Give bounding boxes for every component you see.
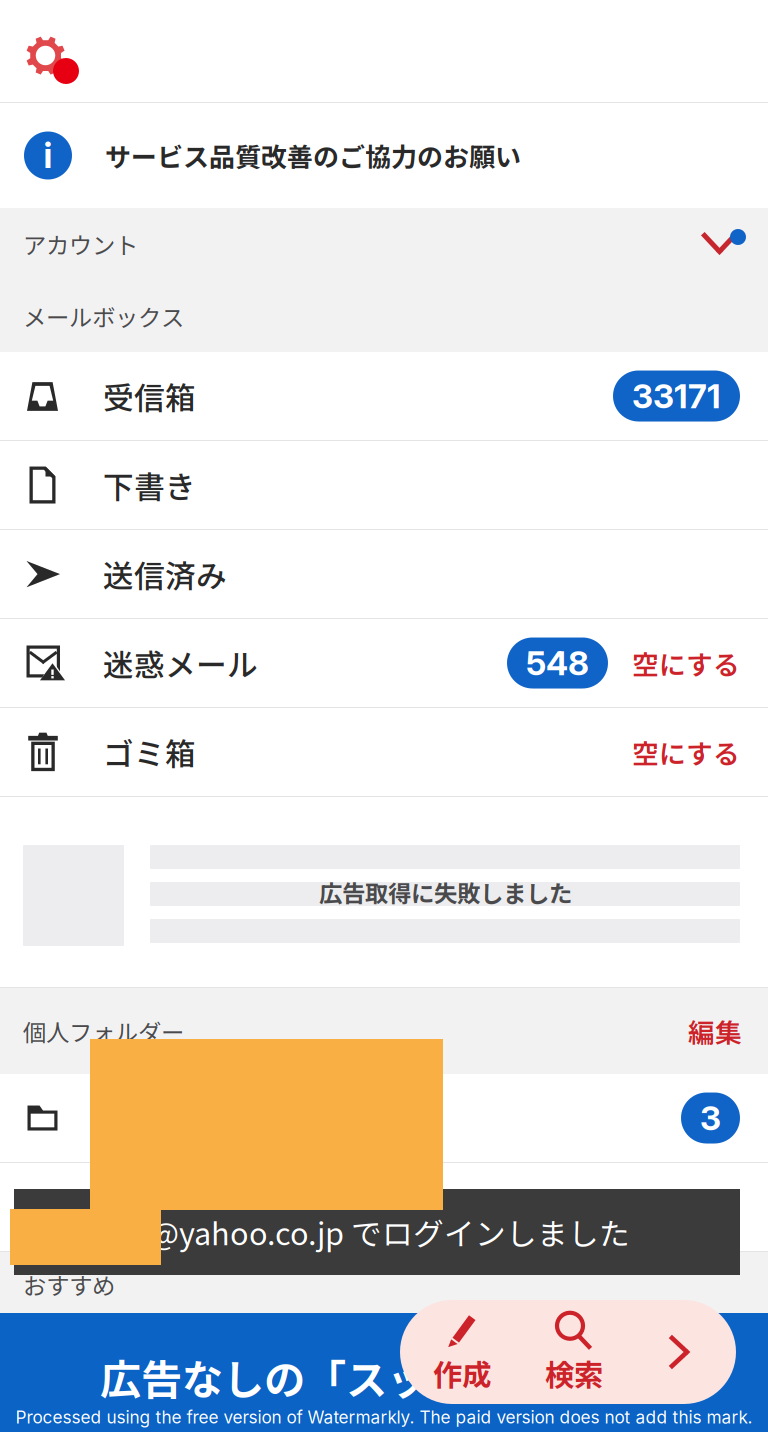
- button[interactable]: 迷惑メール: [0, 619, 768, 707]
- staticText: 広告なしの「スッキリ」体験を。: [100, 1347, 715, 1407]
- button[interactable]: More: [630, 1300, 730, 1404]
- staticText: 受信箱: [103, 374, 196, 418]
- button[interactable]: 下書き: [0, 441, 768, 529]
- staticText: 検索: [545, 1352, 603, 1394]
- button[interactable]: i: [0, 103, 768, 208]
- button[interactable]: [0, 1074, 768, 1162]
- staticText: 送信済み: [103, 552, 227, 596]
- button[interactable]: 編集: [688, 998, 768, 1064]
- button[interactable]: アカウント: [0, 208, 768, 280]
- staticText: おすすめ: [23, 1268, 115, 1301]
- staticText: Processed using the free version of Wate…: [15, 1407, 752, 1428]
- staticText: 編集: [688, 1012, 742, 1050]
- staticText: アカウント: [23, 227, 138, 261]
- staticText: 548: [526, 643, 589, 683]
- staticText: サービス品質改善のご協力のお願い: [105, 137, 521, 174]
- staticText: 3: [700, 1098, 721, 1138]
- button[interactable]: 検索: [518, 1300, 630, 1404]
- staticText: 33171: [632, 376, 721, 416]
- staticText: メールボックス: [23, 299, 184, 333]
- button[interactable]: [0, 1163, 768, 1251]
- button[interactable]: Settings: [0, 0, 79, 102]
- staticText: 迷惑メール: [103, 641, 258, 685]
- button[interactable]: ゴミ箱: [0, 708, 768, 796]
- staticText: 空にする: [632, 733, 740, 771]
- button[interactable]: 送信済み: [0, 530, 768, 618]
- button[interactable]: 作成: [406, 1300, 518, 1404]
- staticText: @yahoo.co.jp でログインしました: [150, 1210, 630, 1254]
- staticText: 作成: [433, 1352, 491, 1394]
- staticText: ゴミ箱: [103, 730, 196, 774]
- staticText: 下書き: [103, 463, 196, 507]
- staticText: i: [43, 134, 52, 176]
- staticText: 広告取得に失敗しました: [319, 875, 572, 909]
- button[interactable]: 受信箱: [0, 352, 768, 440]
- staticText: 空にする: [632, 644, 740, 682]
- staticText: 個人フォルダー: [23, 1014, 184, 1048]
